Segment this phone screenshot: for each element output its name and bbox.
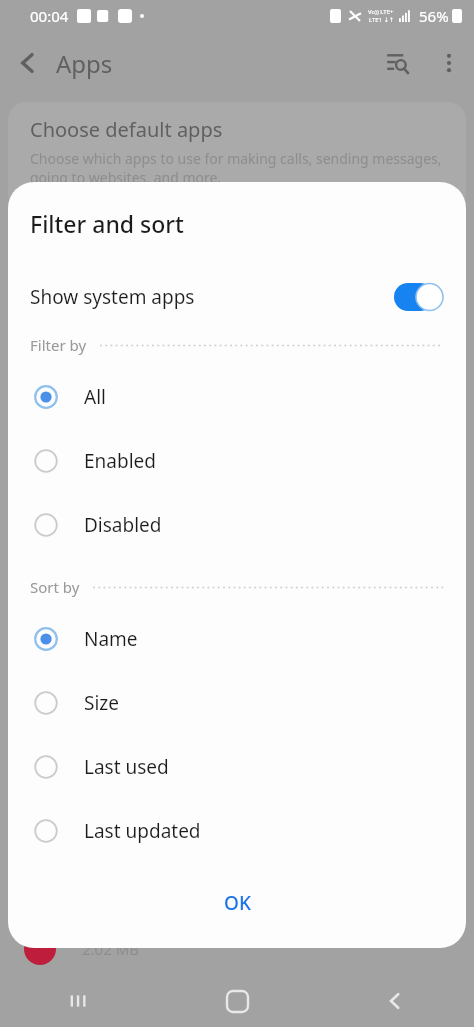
- staticText: 00:04: [30, 6, 69, 26]
- staticText: Vo)) LTE+: [368, 8, 394, 16]
- staticText: Filter and sort: [30, 208, 184, 239]
- staticText: Apps: [56, 47, 113, 80]
- button[interactable]: More options: [424, 38, 474, 88]
- button[interactable]: Last used: [8, 735, 466, 799]
- button[interactable]: Recent apps: [0, 975, 158, 1027]
- staticText: All: [84, 384, 106, 410]
- staticText: Filter by: [30, 335, 87, 355]
- staticText: Sort by: [30, 577, 80, 597]
- staticText: 56%: [419, 6, 449, 26]
- staticText: Disabled: [84, 512, 162, 538]
- button[interactable]: OK: [8, 872, 466, 934]
- button[interactable]: Search apps: [372, 37, 424, 89]
- button[interactable]: All: [8, 365, 466, 429]
- staticText: Last used: [84, 754, 169, 780]
- staticText: Name: [84, 626, 138, 652]
- button[interactable]: Size: [8, 671, 466, 735]
- staticText: 2.02 MB: [82, 939, 140, 959]
- button[interactable]: Back: [0, 35, 56, 91]
- staticText: Choose which apps to use for making call…: [30, 149, 448, 187]
- button[interactable]: Enabled: [8, 429, 466, 493]
- button[interactable]: Disabled: [8, 493, 466, 557]
- staticText: Last updated: [84, 818, 201, 844]
- button[interactable]: Last updated: [8, 799, 466, 863]
- staticText: Show system apps: [30, 284, 195, 310]
- staticText: Size: [84, 690, 119, 716]
- staticText: Enabled: [84, 448, 156, 474]
- button[interactable]: Show system apps: [8, 269, 466, 325]
- button[interactable]: Name: [8, 607, 466, 671]
- staticText: LTE1 ↓↑: [369, 16, 394, 24]
- staticText: OK: [224, 890, 251, 916]
- button[interactable]: Back: [316, 975, 474, 1027]
- staticText: Choose default apps: [30, 116, 223, 143]
- button[interactable]: Home: [158, 975, 316, 1027]
